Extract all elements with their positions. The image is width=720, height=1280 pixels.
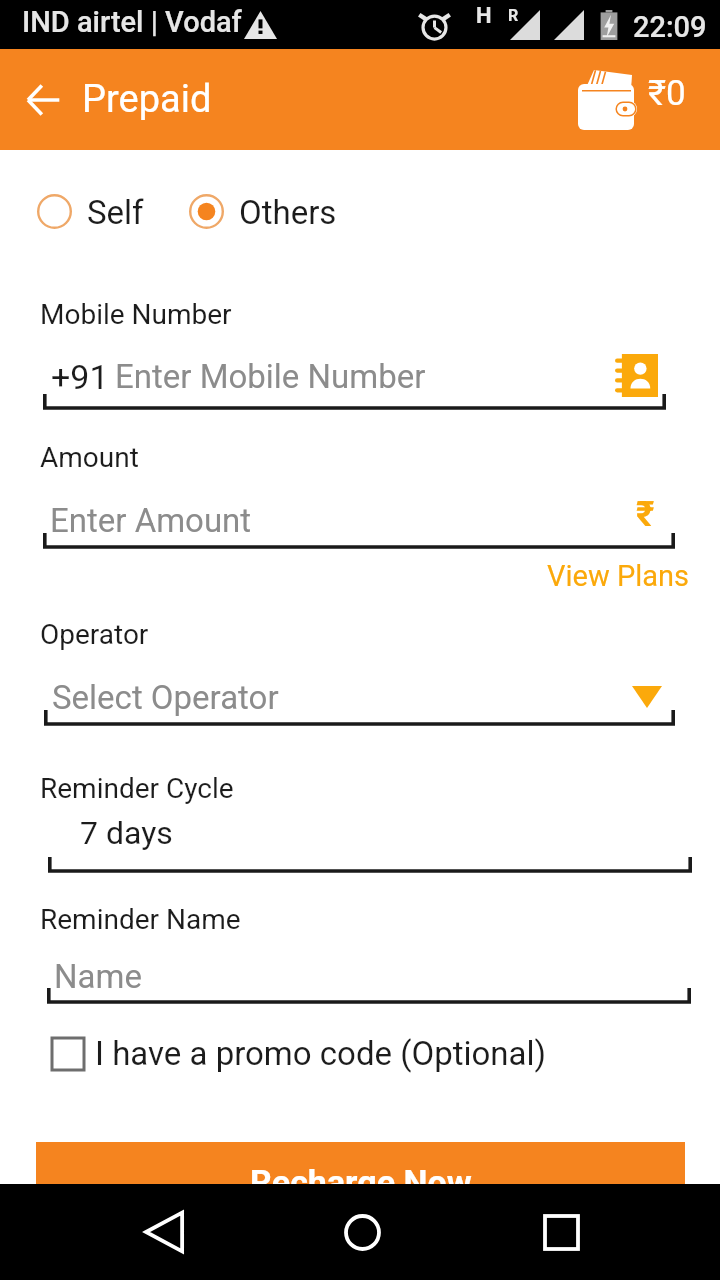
button[interactable]: Pick contact: [605, 344, 667, 406]
staticText: Name: [54, 957, 142, 996]
staticText: Amount: [40, 441, 139, 474]
staticText: Reminder Cycle: [40, 772, 234, 805]
staticText: R: [508, 6, 519, 25]
staticText: I have a promo code (Optional): [95, 1034, 547, 1073]
button[interactable]: Rupee: [617, 486, 673, 542]
staticText: H: [476, 3, 492, 29]
staticText: Operator: [40, 618, 149, 651]
staticText: 22:09: [633, 10, 707, 44]
button[interactable]: Back: [122, 1190, 206, 1274]
staticText: IND airtel | Vodaf: [22, 5, 242, 39]
staticText: +91: [51, 357, 109, 397]
button[interactable]: Home: [320, 1190, 404, 1274]
staticText: Self: [87, 193, 144, 232]
button[interactable]: I have a promo code (Optional): [52, 1034, 547, 1073]
button[interactable]: Self: [30, 186, 152, 238]
button[interactable]: Select operator: [622, 672, 672, 722]
button[interactable]: Recharge Now: [36, 1142, 685, 1242]
button[interactable]: Recents: [519, 1190, 603, 1274]
button[interactable]: Back: [10, 49, 76, 150]
button[interactable]: Wallet balance: [562, 49, 704, 150]
staticText: Reminder Name: [40, 903, 241, 936]
button[interactable]: View Plans: [547, 559, 689, 593]
staticText: Recharge Now: [250, 1162, 472, 1202]
button[interactable]: Others: [182, 186, 340, 238]
staticText: Others: [239, 193, 337, 232]
staticText: Mobile Number: [40, 298, 232, 331]
staticText: Select Operator: [52, 678, 279, 717]
staticText: ₹: [636, 494, 655, 535]
staticText: Prepaid: [82, 77, 212, 122]
staticText: ₹0: [648, 73, 686, 114]
staticText: Enter Mobile Number: [115, 357, 426, 396]
staticText: 7 days: [80, 814, 173, 852]
staticText: Enter Amount: [50, 501, 252, 540]
